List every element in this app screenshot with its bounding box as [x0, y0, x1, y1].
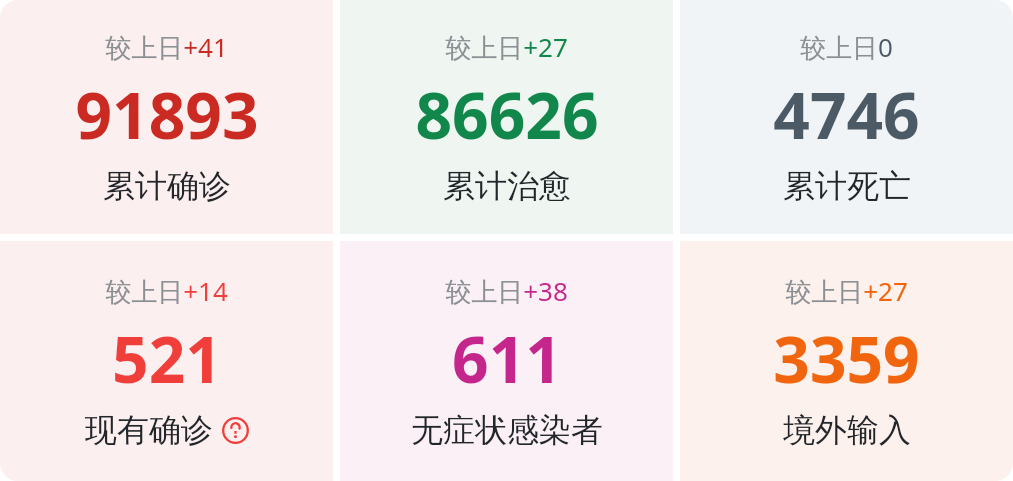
button[interactable]: 较上日+38: [340, 241, 673, 481]
staticText: 无症状感染者: [411, 410, 603, 450]
button[interactable]: 较上日+27: [680, 241, 1013, 481]
staticText: 较上日+14: [105, 273, 228, 309]
button[interactable]: 较上日0: [680, 0, 1013, 234]
staticText: 较上日+41: [105, 29, 228, 65]
staticText: 较上日+27: [785, 273, 908, 309]
staticText: 境外输入: [783, 410, 911, 450]
staticText: 521: [112, 315, 222, 402]
staticText: 现有确诊: [85, 410, 213, 450]
staticText: 累计治愈: [443, 166, 571, 206]
staticText: 4746: [773, 71, 920, 158]
button[interactable]: 较上日+14: [0, 241, 333, 481]
staticText: 较上日0: [800, 29, 893, 65]
staticText: 91893: [75, 71, 259, 158]
staticText: 较上日+27: [445, 29, 568, 65]
staticText: 较上日+38: [445, 273, 568, 309]
staticText: 86626: [415, 71, 599, 158]
staticText: 3359: [773, 315, 920, 402]
staticText: 累计死亡: [783, 166, 911, 206]
button[interactable]: Help about 现有确诊: [222, 417, 249, 444]
button[interactable]: 较上日+41: [0, 0, 333, 234]
staticText: 累计确诊: [103, 166, 231, 206]
button[interactable]: 较上日+27: [340, 0, 673, 234]
staticText: 611: [452, 315, 562, 402]
